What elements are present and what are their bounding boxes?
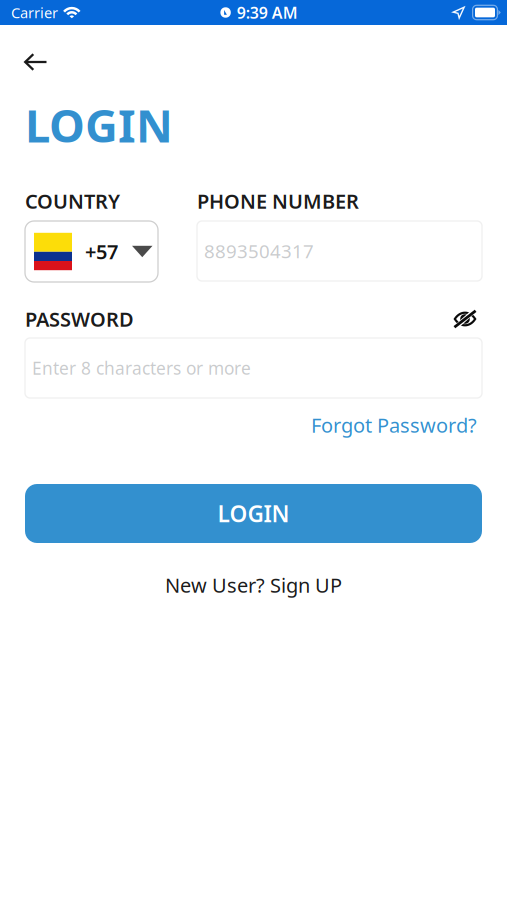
staticText: New User? Sign UP	[165, 572, 342, 598]
staticText: COUNTRY	[25, 188, 120, 214]
button[interactable]: New User? Sign UP	[151, 572, 356, 598]
staticText: LOGIN	[25, 95, 173, 155]
staticText: Carrier	[11, 3, 58, 22]
staticText: Enter 8 characters or more	[32, 356, 251, 379]
staticText: 9:39 AM	[237, 2, 298, 23]
staticText: LOGIN	[217, 498, 289, 528]
staticText: +57	[85, 238, 118, 265]
button[interactable]: LOGIN	[25, 484, 482, 543]
button[interactable]: Back	[0, 43, 63, 81]
staticText: Forgot Password?	[311, 412, 477, 438]
button[interactable]: +57	[25, 221, 158, 282]
button[interactable]: Show password	[451, 309, 482, 329]
staticText: 8893504317	[204, 239, 314, 263]
button[interactable]: Forgot Password?	[311, 413, 477, 437]
staticText: PHONE NUMBER	[197, 188, 359, 214]
staticText: PASSWORD	[25, 306, 134, 332]
